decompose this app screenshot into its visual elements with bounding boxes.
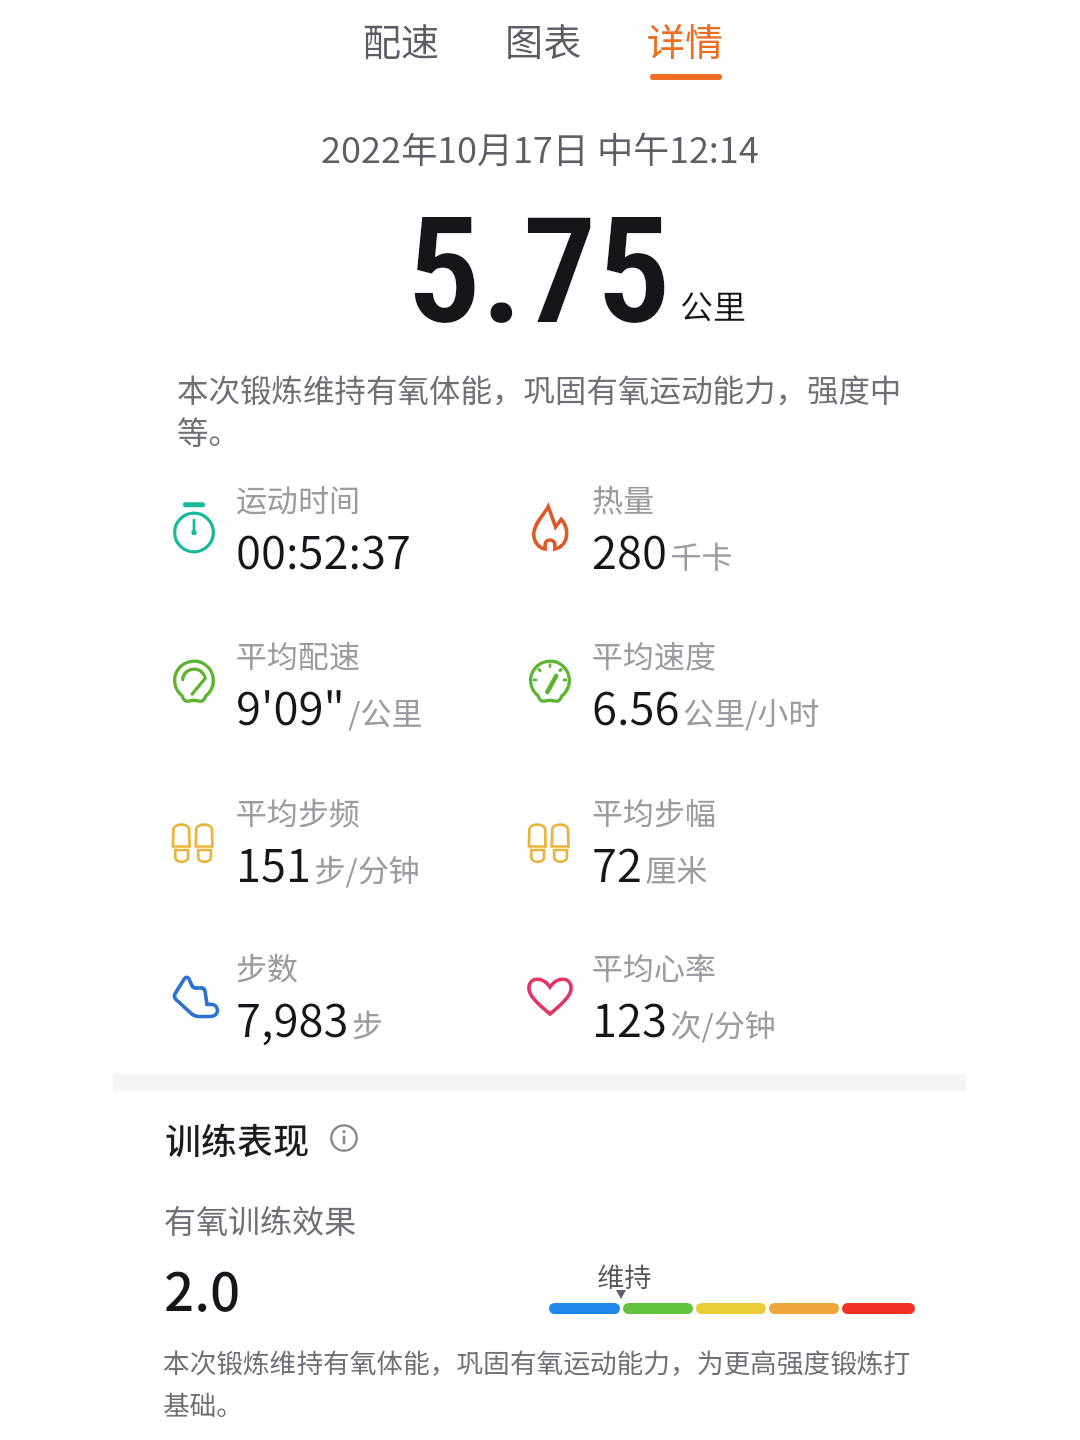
staticText: 151 步/分钟: [236, 830, 420, 895]
staticText: 平均速度: [592, 632, 716, 677]
staticText: 2.0: [164, 1250, 241, 1327]
button[interactable]: 热量: [528, 458, 898, 568]
staticText: 2022年10月17日 中午12:14: [321, 121, 759, 173]
button[interactable]: 平均心率: [528, 926, 898, 1036]
staticText: 图表: [505, 12, 582, 67]
staticText: 00:52:37: [236, 517, 411, 582]
staticText: 本次锻炼维持有氧体能，巩固有氧运动能力，强度中等。: [177, 365, 911, 454]
staticText: 123 次/分钟: [592, 985, 776, 1050]
button[interactable]: 运动时间: [172, 458, 542, 568]
staticText: 7,983 步: [236, 985, 383, 1050]
staticText: 详情: [647, 12, 724, 67]
staticText: 公里: [680, 281, 746, 329]
button[interactable]: 平均步频: [172, 771, 542, 881]
button[interactable]: 详情: [637, 12, 734, 80]
staticText: 配速: [363, 12, 440, 67]
button[interactable]: 图表: [495, 12, 592, 80]
button[interactable]: 平均配速: [172, 614, 542, 724]
staticText: 维持: [597, 1256, 651, 1295]
button[interactable]: 平均速度: [528, 614, 898, 724]
button[interactable]: 配速: [353, 12, 450, 80]
staticText: 平均步频: [236, 789, 360, 834]
staticText: 运动时间: [236, 476, 360, 521]
staticText: 72 厘米: [592, 830, 708, 895]
staticText: 5.75: [407, 186, 671, 358]
other: Info: [330, 1124, 358, 1152]
staticText: 平均心率: [592, 944, 716, 989]
button[interactable]: 训练表现: [165, 1112, 358, 1164]
staticText: 280 千卡: [592, 517, 733, 582]
staticText: 有氧训练效果: [164, 1196, 357, 1242]
staticText: 平均配速: [236, 632, 360, 677]
staticText: 平均步幅: [592, 789, 716, 834]
button[interactable]: 步数: [172, 926, 542, 1036]
staticText: 训练表现: [165, 1112, 310, 1164]
staticText: 步数: [236, 944, 298, 989]
button[interactable]: 平均步幅: [528, 771, 898, 881]
staticText: 热量: [592, 476, 654, 521]
staticText: 本次锻炼维持有氧体能，巩固有氧运动能力，为更高强度锻炼打基础。: [163, 1342, 923, 1422]
staticText: 9'09" /公里: [236, 673, 423, 738]
staticText: 6.56 公里/小时: [592, 673, 820, 738]
